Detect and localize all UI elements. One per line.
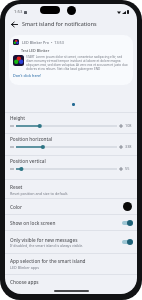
button[interactable]: Show on lock screen xyxy=(5,215,137,230)
staticText: 55 xyxy=(125,166,130,171)
staticText: Reset xyxy=(10,184,23,190)
button[interactable]: Don't click here! xyxy=(13,73,42,78)
staticText: LED Blinker Pro • 13:53 xyxy=(22,40,64,45)
staticText: Position horizontal xyxy=(10,136,53,142)
button[interactable]: Color xyxy=(5,199,137,214)
button[interactable]: Reset xyxy=(5,180,137,198)
staticText: 1:53 xyxy=(14,9,23,15)
staticText: Smart island for notifications xyxy=(22,20,97,27)
button[interactable]: Height xyxy=(5,113,137,133)
staticText: If disabled, the smart island is always … xyxy=(10,243,84,248)
button[interactable]: Position vertical xyxy=(5,156,137,179)
staticText: App selection for the smart island xyxy=(10,258,86,264)
button[interactable]: Position horizontal xyxy=(5,134,137,155)
staticText: Reset position and size to default. xyxy=(10,191,69,196)
staticText: Color xyxy=(10,204,22,210)
staticText: Choose apps xyxy=(10,279,39,285)
staticText: Position vertical xyxy=(10,158,46,164)
button[interactable]: Choose apps xyxy=(5,275,137,288)
button[interactable]: App selection for the smart island xyxy=(5,254,137,274)
staticText: Height xyxy=(10,115,26,121)
staticText: Test LED Blinker xyxy=(21,48,50,53)
staticText: START Lorem ipsum dolor sit amet, conset… xyxy=(26,55,129,71)
staticText: LED Blinker apps xyxy=(10,265,40,270)
staticText: 108 xyxy=(125,123,132,128)
button[interactable]: Only visible for new messages xyxy=(5,231,137,253)
staticText: 338 xyxy=(125,144,132,149)
button[interactable]: Back xyxy=(8,18,20,30)
staticText: Show on lock screen xyxy=(10,220,56,226)
staticText: Only visible for new messages xyxy=(10,237,78,243)
